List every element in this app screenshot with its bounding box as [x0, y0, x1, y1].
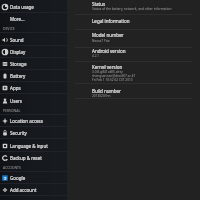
button[interactable]: Build number [67, 84, 200, 99]
staticText: Storage [10, 61, 27, 67]
staticText: Status of the battery, network, and othe… [92, 7, 172, 11]
staticText: DEVICE [3, 26, 15, 31]
button[interactable]: More… [0, 13, 67, 25]
button[interactable]: Data usage [0, 1, 67, 13]
staticText: Users [10, 98, 22, 104]
button[interactable]: Sound [0, 34, 67, 46]
button[interactable]: Backup & reset [0, 152, 67, 164]
button[interactable]: Location access [0, 115, 67, 127]
staticText: Sound [10, 37, 24, 43]
staticText: 3.0.8-g841cd85-dirty [92, 70, 123, 74]
button[interactable]: Legal information [67, 15, 200, 30]
button[interactable]: Users [0, 95, 67, 107]
staticText: Location access [10, 118, 43, 124]
staticText: Data usage [10, 4, 34, 10]
staticText: ACCOUNTS [3, 165, 21, 170]
staticText: Apps [10, 85, 21, 91]
staticText: Battery [10, 73, 26, 79]
staticText: Status [92, 1, 106, 7]
button[interactable]: Status [67, 0, 200, 15]
button[interactable]: Model number [67, 30, 200, 48]
staticText: Model number [92, 32, 124, 38]
staticText: Fri Feb 1 10:52:52 CST 2013 [92, 78, 133, 82]
staticText: More… [10, 16, 25, 22]
button[interactable]: Android version [67, 47, 200, 62]
staticText: Kernel version [92, 64, 123, 70]
staticText: PERSONAL [3, 108, 21, 113]
staticText: 20130207nn [92, 94, 111, 98]
button[interactable]: Battery [0, 70, 67, 82]
button[interactable]: Language & input [0, 140, 67, 152]
button[interactable]: Kernel version [67, 63, 200, 84]
button[interactable]: Add account [0, 184, 67, 196]
staticText: Language & input [10, 143, 48, 149]
staticText: 4.2.1 [92, 54, 100, 58]
staticText: Legal information [92, 18, 130, 24]
staticText: Security [10, 130, 27, 136]
staticText: shengsan.tan@droid07-sz #1 [92, 74, 136, 78]
staticText: Display [10, 49, 26, 55]
staticText: Nexus7 Five [92, 39, 110, 43]
staticText: Add account [10, 187, 37, 193]
button[interactable]: Security [0, 127, 67, 139]
button[interactable]: Google [0, 172, 67, 184]
button[interactable]: Display [0, 46, 67, 58]
staticText: Backup & reset [10, 155, 42, 161]
staticText: Build number [92, 88, 121, 94]
staticText: Google [10, 175, 26, 181]
button[interactable]: Apps [0, 82, 67, 94]
button[interactable]: Storage [0, 58, 67, 70]
staticText: Android version [92, 48, 126, 54]
